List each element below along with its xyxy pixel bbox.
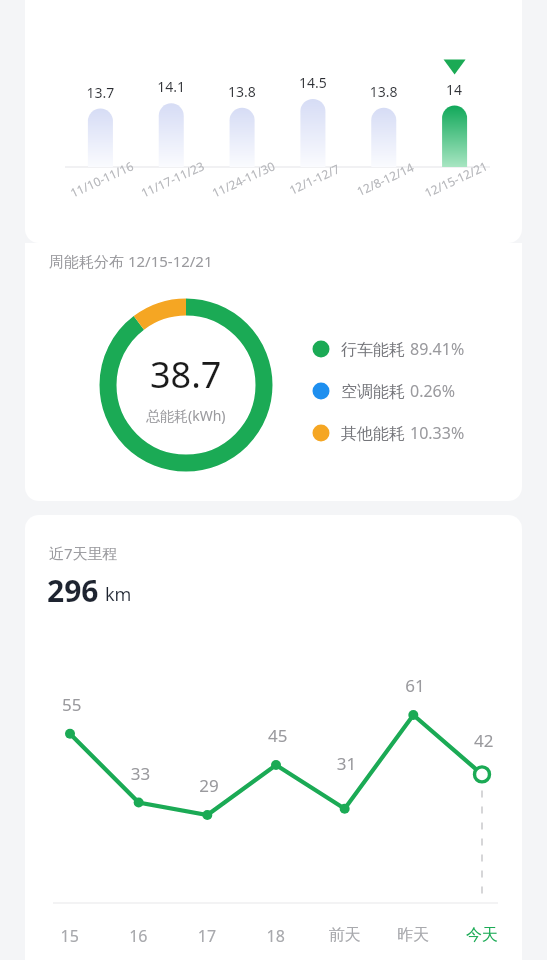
button[interactable]	[25, 515, 522, 960]
button[interactable]	[25, 243, 522, 501]
button[interactable]	[25, 0, 522, 243]
